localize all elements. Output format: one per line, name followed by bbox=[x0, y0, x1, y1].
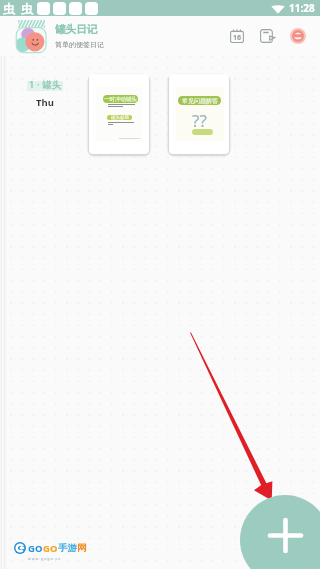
staticText: 罐头日记 bbox=[55, 23, 97, 36]
staticText: 虫 bbox=[21, 1, 33, 16]
button[interactable]: Notes bbox=[256, 25, 278, 47]
button[interactable]: Profile bbox=[287, 25, 309, 47]
staticText: 简单的便签日记 bbox=[55, 40, 104, 49]
staticText: GO bbox=[28, 542, 43, 555]
button[interactable]: 一时冲动罐头 bbox=[89, 74, 149, 154]
button[interactable]: 常见问题解答 bbox=[169, 74, 229, 154]
staticText: Thu bbox=[36, 96, 54, 109]
staticText: 11:28 bbox=[289, 1, 315, 15]
staticText: ?? bbox=[192, 109, 207, 127]
staticText: 一时冲动罐头 bbox=[104, 96, 137, 103]
staticText: 网 bbox=[77, 542, 87, 554]
staticText: 1 · 罐头 bbox=[29, 78, 61, 91]
staticText: www.gogo.cn bbox=[28, 556, 62, 561]
staticText: 虫 bbox=[3, 1, 15, 16]
staticText: 手游 bbox=[58, 542, 77, 554]
staticText: GO bbox=[43, 542, 58, 555]
staticText: 16 bbox=[233, 33, 242, 43]
button[interactable]: Calendar bbox=[226, 25, 248, 47]
button[interactable]: Add bbox=[240, 495, 320, 569]
staticText: 常见问题解答 bbox=[182, 97, 218, 105]
staticText: 罐头标题 bbox=[111, 115, 129, 120]
